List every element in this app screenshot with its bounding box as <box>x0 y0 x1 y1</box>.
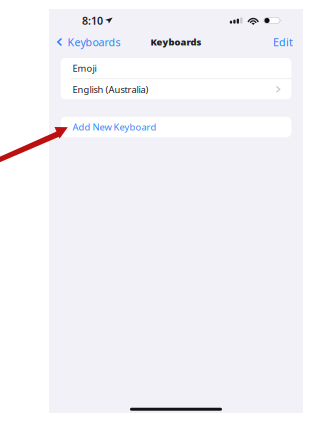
staticText: Keyboards <box>150 36 201 48</box>
staticText: Add New Keyboard <box>73 121 157 133</box>
button[interactable]: Edit <box>273 31 303 53</box>
staticText: Emoji <box>73 62 97 74</box>
button[interactable]: Emoji <box>61 58 291 78</box>
button[interactable]: Keyboards <box>49 31 121 53</box>
button[interactable]: English (Australia) <box>61 79 291 99</box>
staticText: Keyboards <box>68 35 121 49</box>
staticText: English (Australia) <box>73 83 149 95</box>
button[interactable]: Add New Keyboard <box>61 117 291 137</box>
staticText: Edit <box>273 35 293 49</box>
staticText: 8:10 <box>82 13 103 28</box>
